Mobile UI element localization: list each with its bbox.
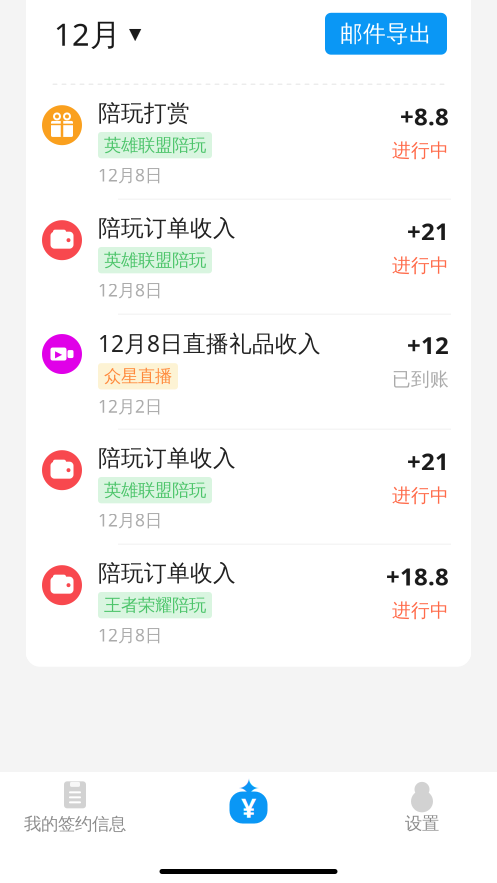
button[interactable]: 资金账单 [226,778,270,824]
staticText: 王者荣耀陪玩 [104,594,206,616]
button[interactable]: ▶ [26,315,471,429]
staticText: 众星直播 [104,366,172,387]
staticText: 进行中 [392,599,449,622]
staticText: 英雄联盟陪玩 [104,479,206,501]
staticText: ▶ [55,349,62,359]
staticText: +8.8 [400,100,449,132]
staticText: 我的签约信息 [24,813,126,835]
button[interactable]: 邮件导出 [325,13,447,55]
staticText: +18.8 [386,560,449,592]
staticText: 进行中 [392,254,449,277]
staticText: +12 [407,329,449,361]
staticText: ✦ [237,773,259,804]
button[interactable]: 设置 [347,778,497,836]
button[interactable]: 12月 [26,5,141,62]
button[interactable]: 我的签约信息 [0,778,150,836]
staticText: 英雄联盟陪玩 [104,134,206,156]
staticText: 12月8日 [98,278,162,301]
staticText: 进行中 [392,484,449,507]
staticText: 12月2日 [98,394,162,417]
staticText: 邮件导出 [340,20,432,48]
staticText: 英雄联盟陪玩 [104,249,206,271]
staticText: 设置 [405,813,439,834]
staticText: 12月8日直播礼品收入 [98,328,321,358]
button[interactable]: 陪玩订单收入 [26,200,471,314]
staticText: ¥ [241,790,256,825]
staticText: 12月8日 [98,508,162,531]
staticText: +21 [407,445,449,477]
staticText: 12月 [54,13,121,54]
staticText: 陪玩订单收入 [98,214,236,242]
button[interactable]: 陪玩打赏 [26,85,471,199]
staticText: 12月8日 [98,163,162,186]
staticText: 陪玩订单收入 [98,559,236,587]
staticText: +21 [407,215,449,247]
staticText: ▼ [129,25,141,43]
staticText: 陪玩订单收入 [98,444,236,472]
staticText: 已到账 [392,368,449,391]
staticText: 陪玩打赏 [98,99,190,127]
staticText: 进行中 [392,139,449,162]
button[interactable]: 陪玩订单收入 [26,430,471,544]
staticText: 12月8日 [98,623,162,646]
button[interactable]: 陪玩订单收入 [26,545,471,659]
